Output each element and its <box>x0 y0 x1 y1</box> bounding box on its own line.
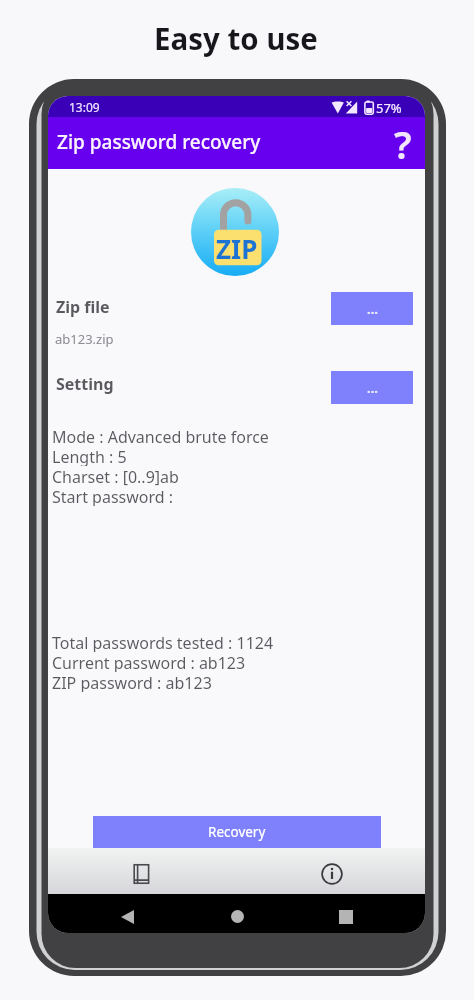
button[interactable]: Help <box>377 117 425 165</box>
button[interactable]: About <box>236 848 425 894</box>
staticText: Length : 5 <box>52 446 127 466</box>
staticText: Easy to use <box>154 18 318 58</box>
staticText: Current password : ab123 <box>52 652 246 672</box>
staticText: Zip file <box>56 296 110 318</box>
staticText: Zip password recovery <box>57 129 261 155</box>
staticText: Charset : [0..9]ab <box>52 466 179 486</box>
staticText: Mode : Advanced brute force <box>52 426 269 446</box>
staticText: 13:09 <box>69 99 100 115</box>
staticText: ? <box>394 118 412 166</box>
staticText: ... <box>367 300 378 318</box>
button[interactable]: Recents <box>315 899 377 933</box>
staticText: Recovery <box>208 823 266 841</box>
button[interactable]: Manual <box>48 848 236 894</box>
staticText: Start password : <box>52 486 174 506</box>
staticText: ... <box>367 379 378 397</box>
staticText: 57% <box>376 99 402 117</box>
button[interactable]: Recovery <box>93 816 381 849</box>
button[interactable]: Browse <box>331 292 413 325</box>
staticText: ZIP <box>216 231 258 266</box>
staticText: Setting <box>56 373 114 395</box>
button[interactable]: Browse <box>331 371 413 404</box>
staticText: Total passwords tested : 1124 <box>52 632 274 652</box>
staticText: ZIP password : ab123 <box>52 672 212 692</box>
button[interactable]: Back <box>96 899 158 933</box>
staticText: ab123.zip <box>55 330 114 348</box>
button[interactable]: Home <box>206 899 268 933</box>
